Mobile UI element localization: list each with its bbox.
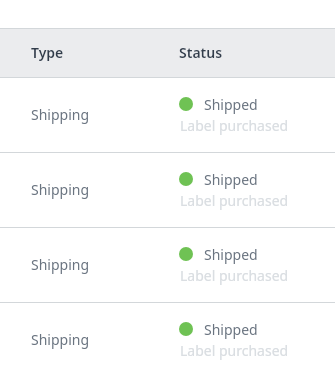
button[interactable]: Shipping [0, 228, 335, 302]
staticText: Label purchased [180, 266, 289, 285]
staticText: Type [31, 43, 64, 62]
button[interactable]: Status [179, 43, 223, 62]
other: Shipped status [179, 322, 193, 336]
other: Shipped status [179, 247, 193, 261]
staticText: Shipped [204, 320, 258, 339]
staticText: Label purchased [180, 191, 289, 210]
staticText: Shipping [31, 105, 90, 124]
staticText: Shipped [204, 245, 258, 264]
staticText: Shipping [31, 180, 90, 199]
button[interactable]: Shipping [0, 78, 335, 152]
staticText: Label purchased [180, 116, 289, 135]
other: Shipped status [179, 97, 193, 111]
other: Shipped status [179, 172, 193, 186]
button[interactable]: Shipping [0, 303, 335, 376]
button[interactable]: Shipping [0, 153, 335, 227]
staticText: Shipping [31, 255, 90, 274]
staticText: Status [179, 43, 223, 62]
staticText: Shipped [204, 170, 258, 189]
button[interactable]: Type [31, 43, 64, 62]
staticText: Label purchased [180, 341, 289, 360]
staticText: Shipped [204, 95, 258, 114]
staticText: Shipping [31, 330, 90, 349]
